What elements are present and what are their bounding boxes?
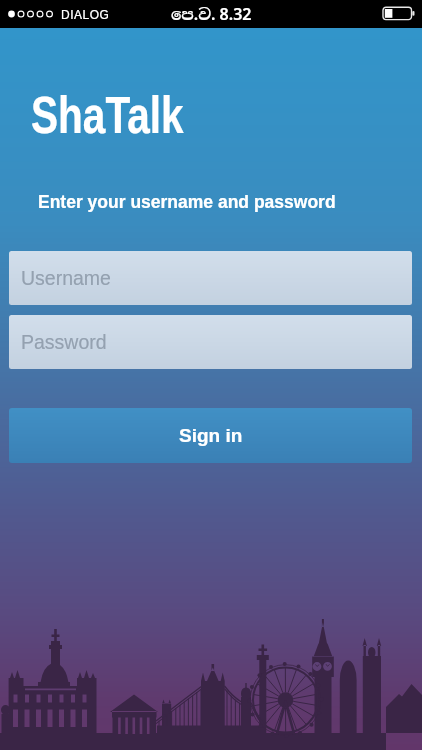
staticText: ShaTalk: [31, 86, 184, 144]
button[interactable]: Username: [9, 251, 412, 305]
staticText: පෙ.ව. 8.32: [171, 3, 252, 25]
staticText: DIALOG: [61, 8, 110, 21]
staticText: Sign in: [179, 425, 243, 446]
button[interactable]: Sign in: [9, 408, 412, 463]
button[interactable]: Password: [9, 315, 412, 369]
staticText: Username: [21, 267, 111, 289]
staticText: Password: [21, 331, 107, 353]
staticText: Enter your username and password: [38, 192, 336, 212]
